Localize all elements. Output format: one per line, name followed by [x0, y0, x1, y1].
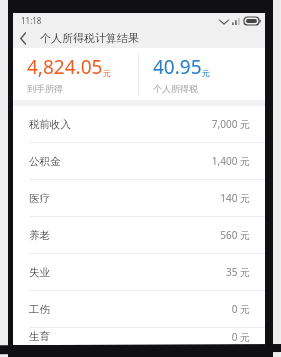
staticText: 11:18 [21, 15, 42, 26]
staticText: 140 元 [220, 191, 250, 205]
staticText: 个人所得税 [153, 83, 198, 94]
staticText: 元 [202, 68, 210, 78]
button[interactable]: 医疗 [13, 180, 265, 216]
staticText: 元 [103, 68, 111, 78]
staticText: 35 元 [225, 265, 250, 279]
staticText: 生育 [29, 330, 231, 343]
staticText: 养老 [29, 229, 220, 242]
staticText: 税前收入 [29, 118, 211, 131]
staticText: 到手所得 [27, 83, 63, 94]
staticText: 0 元 [231, 302, 250, 316]
button[interactable]: 4,824.05 [13, 48, 138, 100]
button[interactable]: 养老 [13, 217, 265, 253]
staticText: 0 元 [231, 330, 250, 344]
staticText: 个人所得税计算结果 [40, 31, 139, 45]
staticText: 7,000 元 [211, 117, 250, 131]
staticText: 失业 [29, 266, 225, 279]
button[interactable]: 工伤 [13, 291, 265, 327]
button[interactable]: 生育 [13, 328, 265, 345]
button[interactable]: 失业 [13, 254, 265, 290]
button[interactable]: Back [13, 28, 33, 48]
button[interactable]: 公积金 [13, 143, 265, 179]
button[interactable]: 40.95 [139, 48, 265, 100]
staticText: 医疗 [29, 192, 220, 205]
staticText: 40.95 [153, 54, 202, 80]
staticText: 工伤 [29, 303, 231, 316]
staticText: 1,400 元 [211, 154, 250, 168]
staticText: 560 元 [220, 228, 250, 242]
button[interactable]: 税前收入 [13, 106, 265, 142]
staticText: 4,824.05 [27, 54, 103, 80]
staticText: 公积金 [29, 155, 211, 168]
